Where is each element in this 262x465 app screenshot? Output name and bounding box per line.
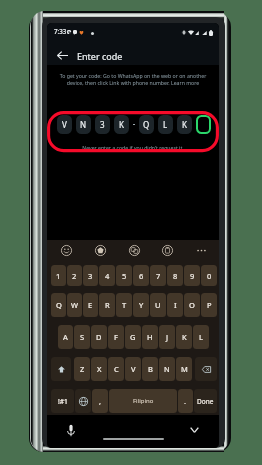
button[interactable]: . [178,389,193,413]
button[interactable]: A [58,325,73,349]
staticText: L [199,332,203,342]
button[interactable]: E [83,293,98,317]
staticText: H [147,332,153,342]
staticText: W [71,300,78,310]
staticText: 7:33 [54,27,67,35]
button[interactable]: 8 [167,265,183,286]
button[interactable]: Hide keyboard [187,424,201,436]
button[interactable]: More options [195,244,208,257]
staticText: Q [143,119,150,130]
button[interactable]: N [159,357,175,381]
staticText: 3 [88,271,93,281]
button[interactable]: 9 [184,265,200,286]
button[interactable]: Shift [51,357,71,381]
button[interactable]: Stickers [94,244,107,257]
button[interactable]: L [193,325,209,349]
staticText: K [182,119,187,130]
button[interactable]: Emoji [60,244,73,257]
staticText: 5 [122,271,127,281]
staticText: B [148,364,153,374]
button[interactable]: V [57,115,72,134]
button[interactable]: S [74,325,90,349]
button[interactable]: 1 [51,265,66,286]
button[interactable]: G [125,325,141,349]
staticText: K [119,119,124,130]
staticText: 9 [190,271,195,281]
button[interactable]: N [76,115,91,134]
button[interactable]: Translate [128,244,141,257]
button[interactable]: K [177,115,192,134]
button[interactable]: U [150,293,166,317]
staticText: L [163,119,168,130]
staticText: 4 [105,271,110,281]
button[interactable]: Q [51,293,66,317]
button[interactable]: P [201,293,217,317]
button[interactable]: 7 [150,265,166,286]
button[interactable]: Y [133,293,149,317]
staticText: F [114,332,118,342]
staticText: !#1 [58,397,68,406]
button[interactable]: Change keyboard language [75,389,91,413]
staticText: Done [197,397,214,406]
staticText: 8 [173,271,178,281]
staticText: , [99,396,102,406]
staticText: A [63,332,68,342]
staticText: Never enter a code if you didn't request… [47,144,219,151]
staticText: V [131,364,136,374]
staticText: T [122,300,127,310]
button[interactable]: , [92,389,108,413]
button[interactable]: W [67,293,82,317]
button[interactable]: K [114,115,129,134]
staticText: Filipino [133,397,154,405]
staticText: C [114,364,119,374]
button[interactable]: H [142,325,158,349]
button[interactable]: 3 [95,115,110,134]
button[interactable]: X [91,357,107,381]
button[interactable]: 3 [83,265,98,286]
button[interactable]: M [176,357,192,381]
button[interactable]: V [125,357,141,381]
staticText: 6 [139,271,144,281]
staticText: O [189,300,195,310]
button[interactable]: Back [54,47,71,64]
staticText: R [105,300,110,310]
staticText: U [155,300,161,310]
button[interactable]: 6 [133,265,149,286]
button[interactable]: I [167,293,183,317]
button[interactable]: 2 [67,265,82,286]
button[interactable]: J [159,325,175,349]
button[interactable]: Code digit 8 [196,115,211,134]
button[interactable]: 0 [201,265,217,286]
button[interactable]: Done [194,389,217,413]
button[interactable]: 5 [116,265,132,286]
staticText: To get your code: Go to WhatsApp on the … [51,72,215,86]
staticText: Enter code [77,50,123,62]
button[interactable]: 4 [99,265,115,286]
button[interactable]: Filipino [109,389,177,413]
button[interactable]: Clipboard [161,244,174,257]
button[interactable]: L [158,115,173,134]
button[interactable]: R [99,293,115,317]
button[interactable]: T [116,293,132,317]
button[interactable]: Q [139,115,154,134]
button[interactable]: C [108,357,124,381]
staticText: V [62,119,67,130]
button[interactable]: F [108,325,124,349]
staticText: P [207,300,212,310]
button[interactable]: Z [74,357,90,381]
button[interactable]: O [184,293,200,317]
staticText: 0 [207,271,212,281]
button[interactable]: Backspace [195,357,217,381]
staticText: . [184,396,187,406]
staticText: 1 [56,271,61,281]
staticText: M [181,364,188,374]
staticText: J [166,332,169,342]
staticText: N [164,364,170,374]
staticText: 7 [156,271,161,281]
button[interactable]: B [142,357,158,381]
button[interactable]: !#1 [51,389,74,413]
button[interactable]: K [176,325,192,349]
button[interactable]: Voice input [65,423,77,437]
button[interactable]: D [91,325,107,349]
staticText: Z [80,364,85,374]
